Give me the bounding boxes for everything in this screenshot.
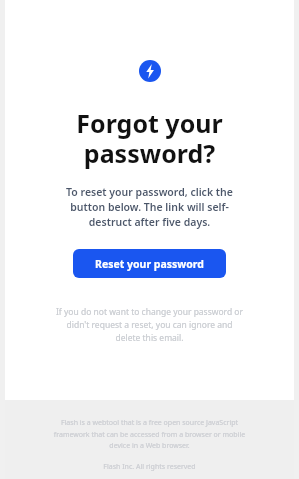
button[interactable]: Reset your password xyxy=(73,249,226,278)
staticText: Forgot your password? xyxy=(5,106,294,170)
staticText: Reset your password xyxy=(95,257,204,271)
staticText: To reset your password, click the button… xyxy=(5,185,294,229)
staticText: Flash is a webtool that is a free open s… xyxy=(5,418,294,450)
staticText: Flash Inc. All rights reserved xyxy=(5,462,294,472)
other: Flash logo xyxy=(139,60,161,82)
staticText: If you do not want to change your passwo… xyxy=(5,306,294,344)
